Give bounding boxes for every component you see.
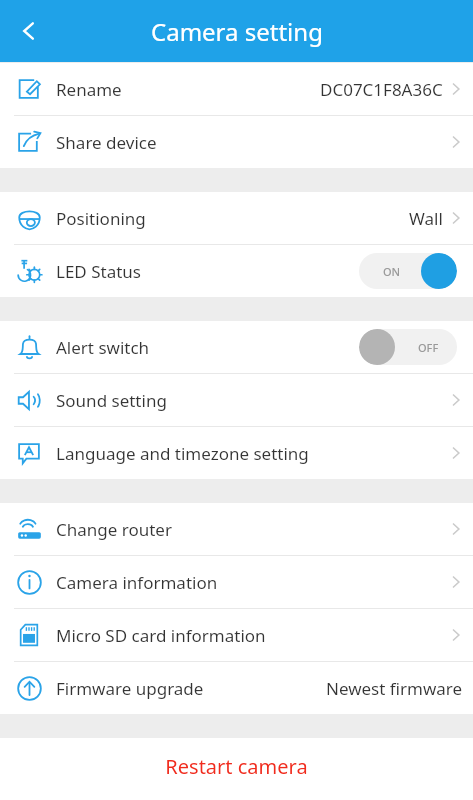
button[interactable]: Back <box>0 2 58 60</box>
staticText: Restart camera <box>165 753 308 780</box>
staticText: Share device <box>56 131 157 154</box>
button[interactable]: Camera information <box>0 556 473 608</box>
button[interactable]: Positioning <box>0 192 473 244</box>
staticText: Camera information <box>56 571 218 594</box>
button[interactable]: Restart camera <box>0 738 473 794</box>
staticText: Language and timezone setting <box>56 442 309 465</box>
staticText: Rename <box>56 78 122 101</box>
staticText: Newest firmware <box>326 677 463 700</box>
button[interactable]: Language and timezone setting <box>0 427 473 479</box>
button[interactable]: Change router <box>0 503 473 555</box>
staticText: Sound setting <box>56 389 167 412</box>
staticText: LED Status <box>56 260 141 283</box>
button[interactable]: Sound setting <box>0 374 473 426</box>
staticText: Wall <box>409 207 443 230</box>
button[interactable]: Switch off <box>359 329 457 365</box>
staticText: Firmware upgrade <box>56 677 204 700</box>
staticText: ON <box>383 264 401 279</box>
staticText: Micro SD card information <box>56 624 266 647</box>
button[interactable]: Rename <box>0 63 473 115</box>
staticText: Change router <box>56 518 172 541</box>
button[interactable]: Switch on <box>359 253 457 289</box>
button[interactable]: Share device <box>0 116 473 168</box>
button[interactable]: Firmware upgrade <box>0 662 473 714</box>
button[interactable]: Micro SD card information <box>0 609 473 661</box>
staticText: Camera setting <box>151 15 323 48</box>
staticText: Positioning <box>56 207 146 230</box>
staticText: Alert switch <box>56 336 150 359</box>
staticText: OFF <box>418 340 439 355</box>
staticText: DC07C1F8A36C <box>320 78 443 101</box>
